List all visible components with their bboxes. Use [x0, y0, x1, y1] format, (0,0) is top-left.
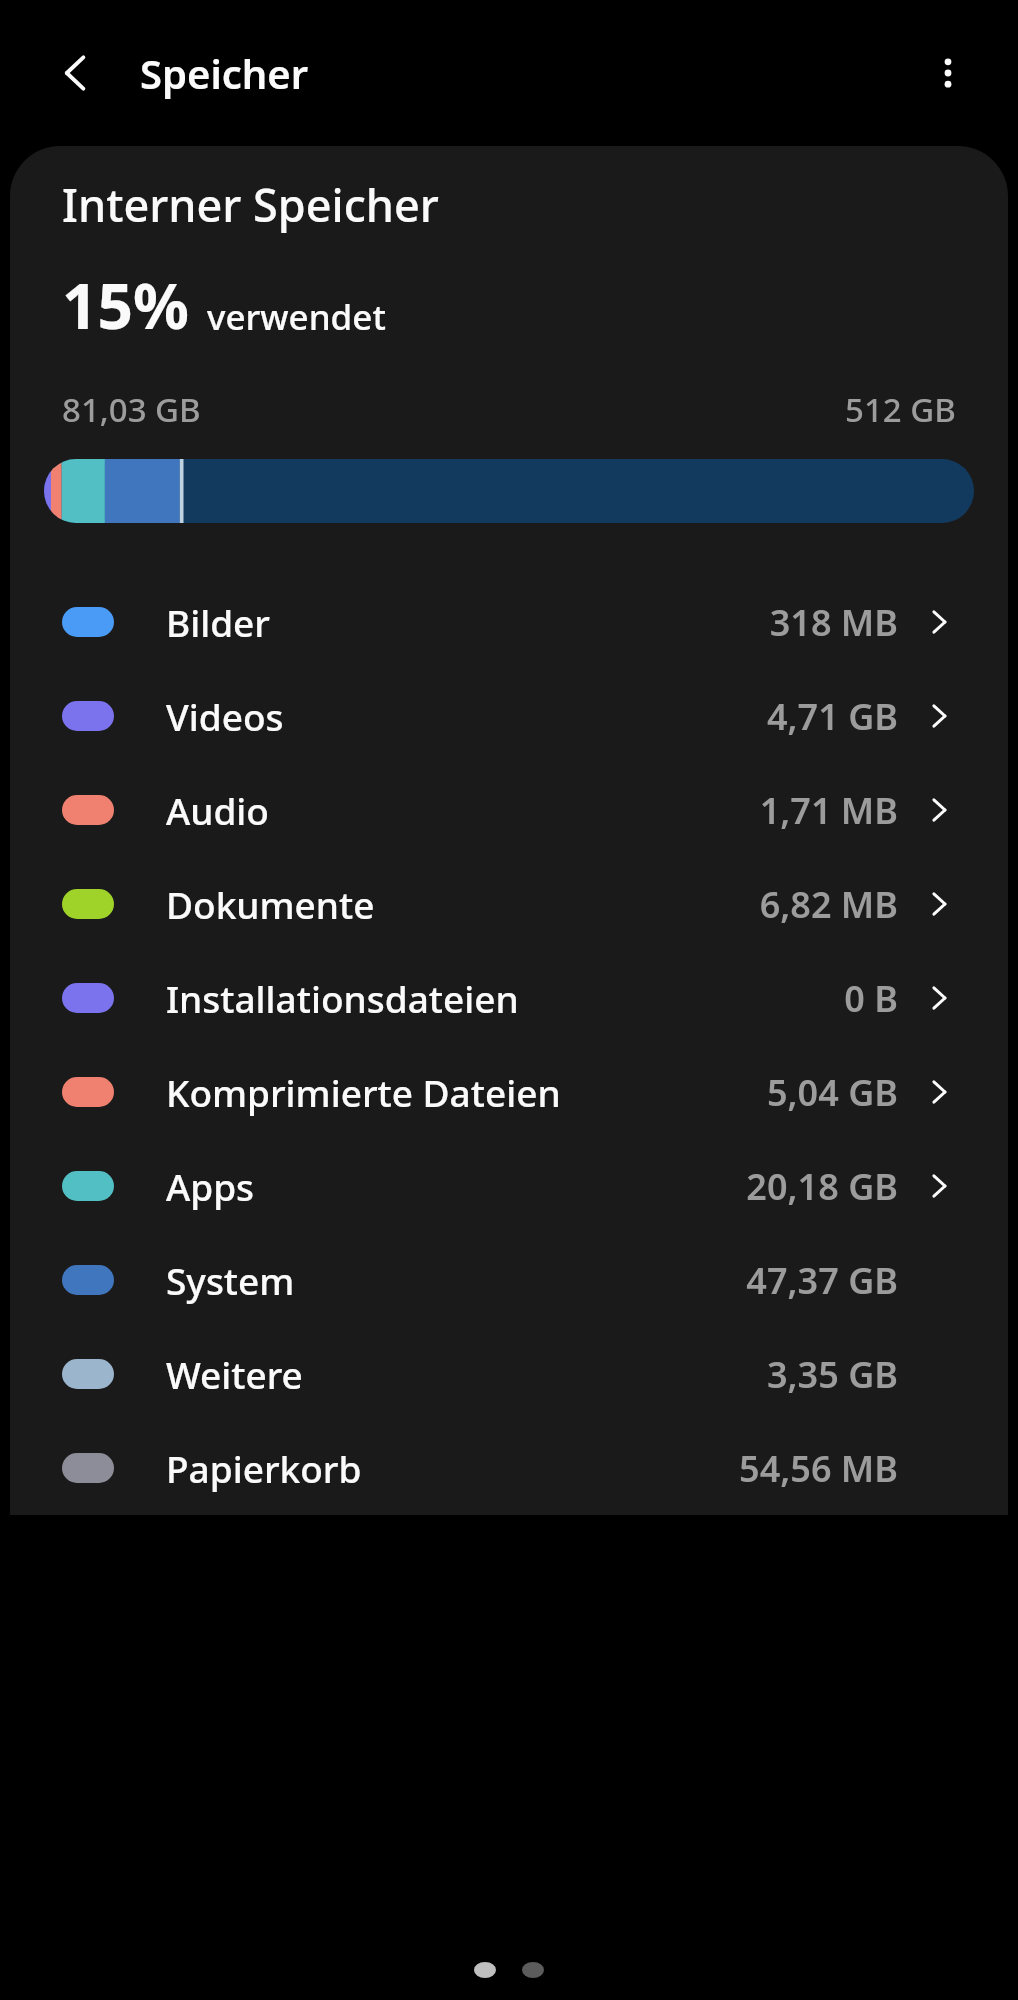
button[interactable]: Weitere	[10, 1327, 1008, 1421]
staticText: 5,04 GB	[766, 1068, 898, 1117]
button[interactable]: Back	[38, 35, 114, 111]
staticText: Papierkorb	[166, 1443, 362, 1493]
staticText: 81,03 GB	[62, 387, 201, 432]
staticText: Dokumente	[166, 879, 375, 929]
staticText: 6,82 MB	[759, 880, 898, 929]
staticText: 15%	[62, 263, 189, 347]
button[interactable]: Papierkorb	[10, 1421, 1008, 1515]
staticText: verwendet	[207, 293, 386, 341]
button[interactable]: Installationsdateien	[10, 951, 1008, 1045]
staticText: Komprimierte Dateien	[166, 1067, 561, 1117]
staticText: Videos	[166, 691, 284, 741]
staticText: Apps	[166, 1161, 255, 1211]
button[interactable]: Apps	[10, 1139, 1008, 1233]
staticText: Interner Speicher	[62, 174, 439, 235]
staticText: Audio	[166, 785, 269, 835]
staticText: 318 MB	[769, 598, 898, 647]
staticText: 1,71 MB	[759, 786, 898, 835]
button[interactable]: Dokumente	[10, 857, 1008, 951]
staticText: Weitere	[166, 1349, 303, 1399]
staticText: System	[166, 1255, 295, 1305]
staticText: 20,18 GB	[746, 1162, 898, 1211]
staticText: 0 B	[844, 974, 898, 1023]
staticText: Speicher	[140, 46, 309, 100]
staticText: Installationsdateien	[166, 973, 519, 1023]
button[interactable]: Audio	[10, 763, 1008, 857]
staticText: 47,37 GB	[746, 1256, 898, 1305]
staticText: 512 GB	[845, 387, 956, 432]
staticText: 54,56 MB	[739, 1444, 898, 1493]
button[interactable]: More options	[910, 35, 986, 111]
button[interactable]: Komprimierte Dateien	[10, 1045, 1008, 1139]
button[interactable]: Bilder	[10, 575, 1008, 669]
staticText: 4,71 GB	[766, 692, 898, 741]
button[interactable]: Videos	[10, 669, 1008, 763]
button[interactable]: System	[10, 1233, 1008, 1327]
staticText: 3,35 GB	[766, 1350, 898, 1399]
staticText: Bilder	[166, 597, 271, 647]
